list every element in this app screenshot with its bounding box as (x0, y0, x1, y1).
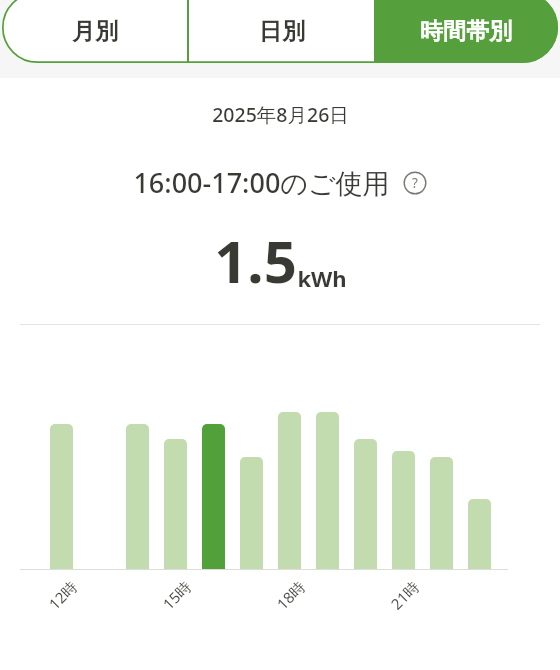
staticText: 時間帯別 (420, 17, 512, 46)
button[interactable]: 時間帯別 (374, 0, 558, 63)
staticText: 1.5 (214, 221, 297, 300)
button[interactable]: 月別 (2, 0, 187, 63)
staticText: 16:00-17:00のご使用 (133, 164, 390, 201)
staticText: 月別 (72, 17, 118, 46)
button[interactable]: 日別 (189, 0, 374, 63)
staticText: ? (412, 174, 418, 192)
staticText: kWh (297, 263, 347, 293)
button[interactable]: ヘルプ (403, 171, 427, 195)
staticText: 2025年8月26日 (212, 101, 349, 128)
staticText: 日別 (259, 17, 305, 46)
